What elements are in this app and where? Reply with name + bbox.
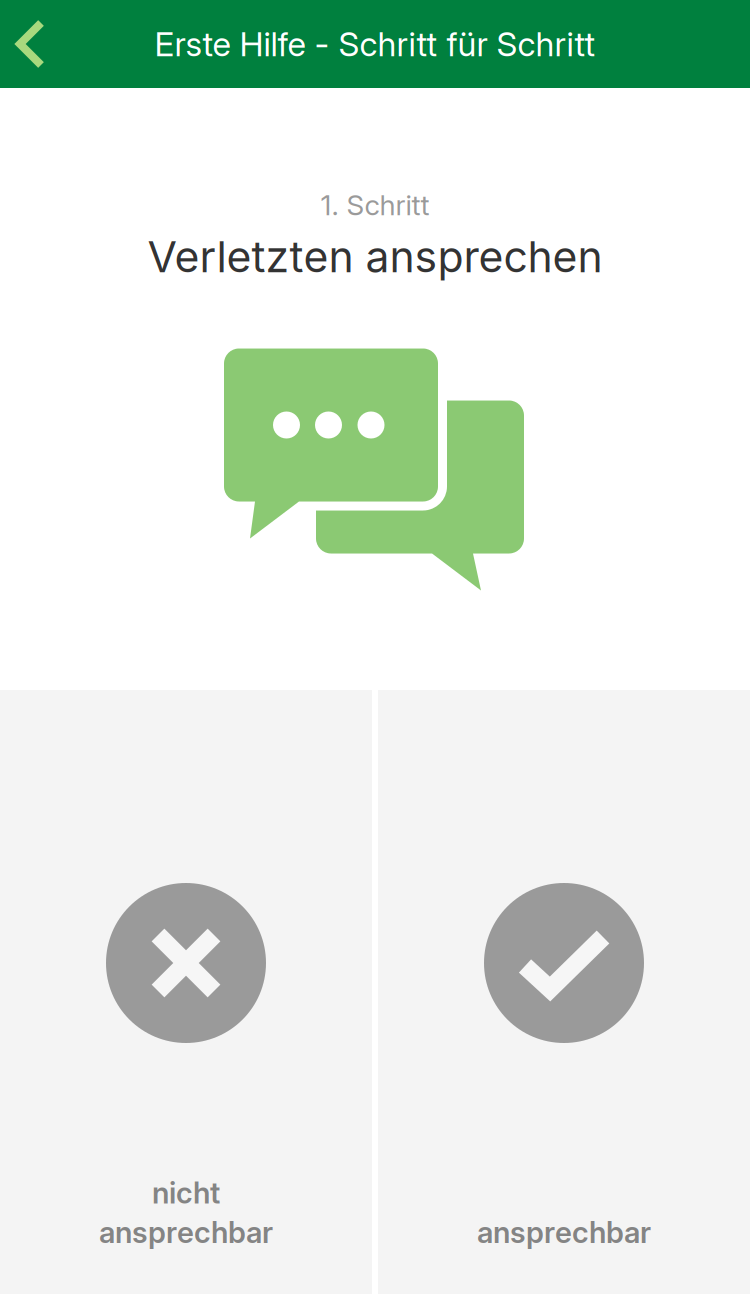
button[interactable]: Zurück bbox=[0, 0, 62, 88]
staticText: Erste Hilfe - Schritt für Schritt bbox=[154, 24, 595, 64]
staticText: ansprechbar bbox=[99, 1214, 273, 1250]
staticText: Verletzten ansprechen bbox=[147, 231, 602, 282]
button[interactable]: ansprechbar bbox=[378, 690, 750, 1294]
button[interactable]: nicht ansprechbar bbox=[0, 690, 372, 1294]
staticText: nicht bbox=[152, 1175, 220, 1210]
staticText: ansprechbar bbox=[477, 1214, 651, 1250]
staticText: 1. Schritt bbox=[320, 188, 429, 222]
